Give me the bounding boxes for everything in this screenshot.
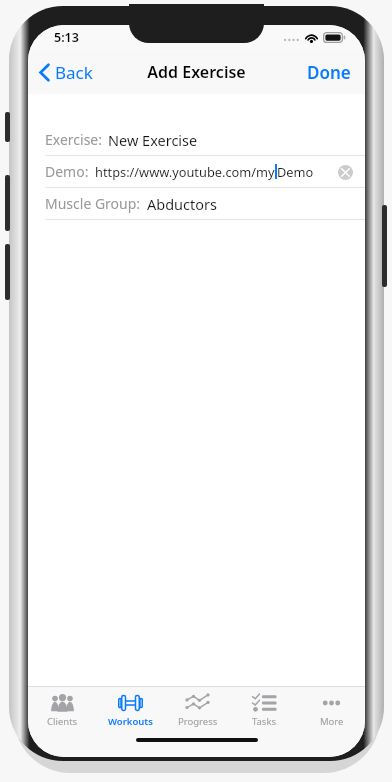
staticText: Exercise:: [45, 130, 102, 149]
button[interactable]: Back: [28, 54, 105, 91]
staticText: 5:13: [54, 29, 79, 46]
staticText: Progress: [178, 715, 218, 728]
staticText: More: [320, 715, 344, 728]
button[interactable]: Clients: [28, 687, 96, 735]
button[interactable]: Progress: [164, 687, 231, 735]
button[interactable]: More: [298, 687, 365, 735]
staticText: Add Exercise: [147, 61, 246, 83]
staticText: Workouts: [108, 715, 153, 728]
staticText: Tasks: [252, 715, 277, 728]
staticText: Demo:: [45, 162, 89, 181]
button[interactable]: Muscle Group:: [28, 188, 365, 219]
staticText: Back: [55, 61, 93, 84]
button[interactable]: Demo:: [28, 156, 365, 187]
button[interactable]: Clear text: [334, 161, 356, 183]
staticText: Done: [307, 61, 351, 84]
button[interactable]: Workouts: [96, 687, 164, 735]
button[interactable]: Done: [293, 52, 365, 93]
staticText: New Exercise: [108, 130, 198, 150]
staticText: Muscle Group:: [45, 194, 141, 213]
staticText: Abductors: [147, 194, 217, 214]
staticText: Demo: [277, 163, 314, 180]
button[interactable]: Tasks: [231, 687, 298, 735]
button[interactable]: Exercise:: [28, 124, 365, 155]
staticText: https://www.youtube.com/my: [95, 163, 275, 180]
staticText: Clients: [47, 715, 78, 728]
